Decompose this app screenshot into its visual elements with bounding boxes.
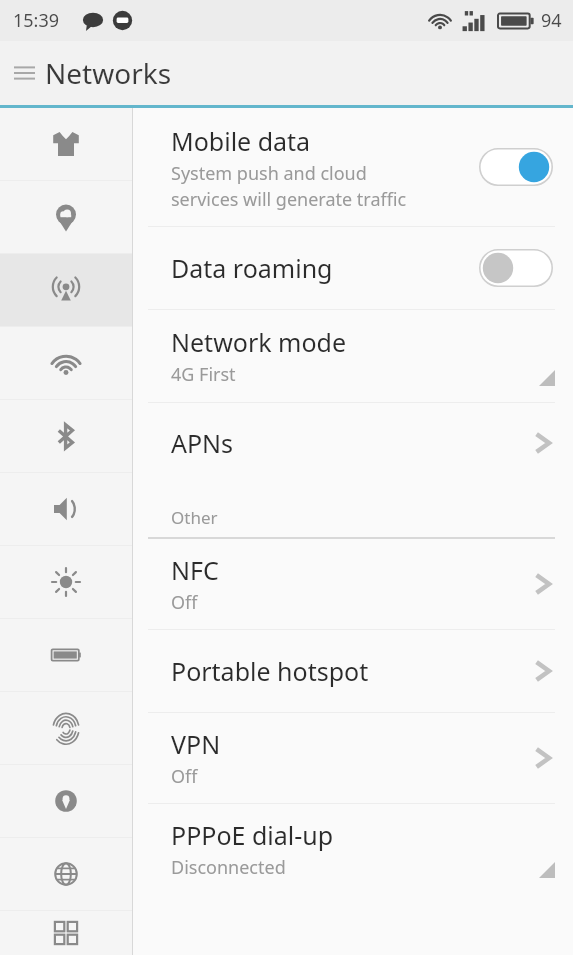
button[interactable]: Fingerprint (0, 692, 132, 764)
button[interactable]: Data roaming (133, 227, 573, 309)
staticText: PPPoE dial-up (171, 818, 334, 852)
staticText: System push and cloud services will gene… (171, 161, 407, 211)
button[interactable]: Cloud (0, 181, 132, 253)
button[interactable]: VPN (133, 713, 573, 803)
button[interactable]: NFC (133, 539, 573, 629)
button[interactable]: Portable hotspot (133, 630, 573, 712)
staticText: NFC (171, 553, 219, 587)
staticText: Network mode (171, 325, 347, 359)
staticText: Disconnected (171, 855, 286, 880)
staticText: Mobile data (171, 124, 311, 158)
button[interactable]: Mobile data (133, 108, 573, 226)
button[interactable]: Sound (0, 473, 132, 545)
button[interactable]: PPPoE dial-up (133, 804, 573, 894)
staticText: Portable hotspot (171, 654, 369, 688)
button[interactable]: Battery (0, 619, 132, 691)
staticText: APNs (171, 426, 234, 460)
button[interactable]: APNs (133, 403, 573, 483)
button[interactable]: Themes (0, 108, 132, 180)
button[interactable]: Bluetooth (0, 400, 132, 472)
button[interactable]: Apps (0, 911, 132, 955)
staticText: 94 (541, 8, 562, 33)
staticText: VPN (171, 727, 221, 761)
staticText: Data roaming (171, 251, 333, 285)
staticText: Off (171, 764, 198, 789)
button[interactable]: Networks (0, 254, 132, 326)
button[interactable]: Toggle on (479, 148, 553, 186)
staticText: 4G First (171, 362, 236, 387)
button[interactable]: Display (0, 546, 132, 618)
staticText: Networks (45, 54, 172, 92)
button[interactable]: Open navigation menu (12, 57, 37, 89)
button[interactable]: Language (0, 838, 132, 910)
staticText: Off (171, 590, 198, 615)
button[interactable]: Location (0, 765, 132, 837)
staticText: 15:39 (13, 8, 60, 33)
staticText: Other (171, 506, 218, 529)
button[interactable]: Toggle off (479, 249, 553, 287)
button[interactable]: Network mode (133, 310, 573, 402)
button[interactable]: Wi-Fi (0, 327, 132, 399)
